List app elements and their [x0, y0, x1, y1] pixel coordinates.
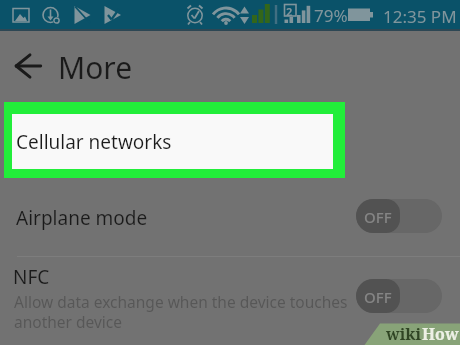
staticText: Cellular networks [16, 129, 172, 155]
button[interactable]: Off switch [356, 279, 442, 313]
staticText: OFF [364, 287, 392, 307]
button[interactable]: Off switch [356, 199, 442, 233]
button[interactable]: Back [8, 52, 48, 80]
staticText: Airplane mode [16, 205, 148, 231]
staticText: wiki [386, 323, 422, 345]
staticText: 2 [286, 4, 293, 19]
button[interactable]: NFC [0, 256, 460, 345]
staticText: More [58, 47, 133, 88]
staticText: How [422, 323, 459, 345]
staticText: Allow data exchange when the device touc… [14, 291, 348, 333]
staticText: OFF [364, 207, 392, 227]
button[interactable]: Cellular networks [4, 102, 345, 178]
staticText: 12:35 PM [383, 5, 457, 28]
staticText: NFC [13, 264, 50, 290]
button[interactable]: Airplane mode [0, 180, 460, 252]
staticText: 79% [314, 4, 348, 27]
